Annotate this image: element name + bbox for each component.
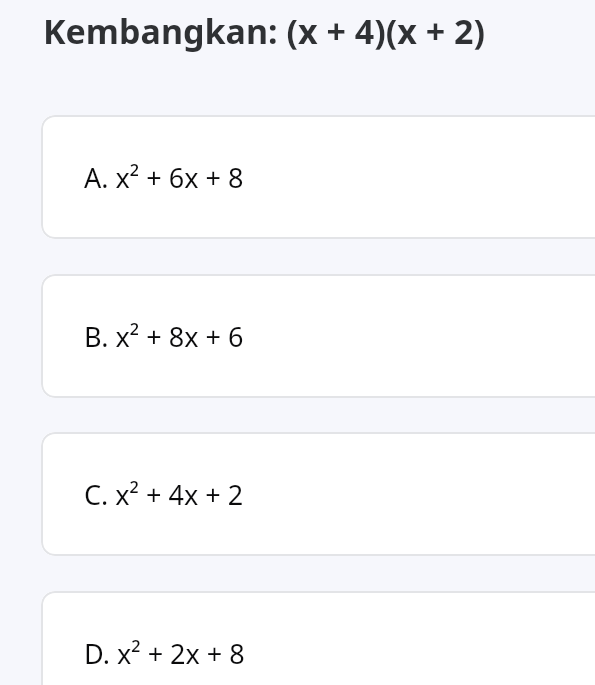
button[interactable]: B. x² + 8x + 6 <box>41 274 595 398</box>
button[interactable]: A. x² + 6x + 8 <box>41 115 595 239</box>
staticText: D. x² + 2x + 8 <box>84 635 245 672</box>
button[interactable]: C. x² + 4x + 2 <box>41 432 595 556</box>
staticText: Kembangkan: (x + 4)(x + 2) <box>43 8 595 54</box>
staticText: A. x² + 6x + 8 <box>84 159 244 196</box>
button[interactable]: D. x² + 2x + 8 <box>41 591 595 685</box>
staticText: C. x² + 4x + 2 <box>84 476 244 513</box>
staticText: B. x² + 8x + 6 <box>84 318 244 355</box>
